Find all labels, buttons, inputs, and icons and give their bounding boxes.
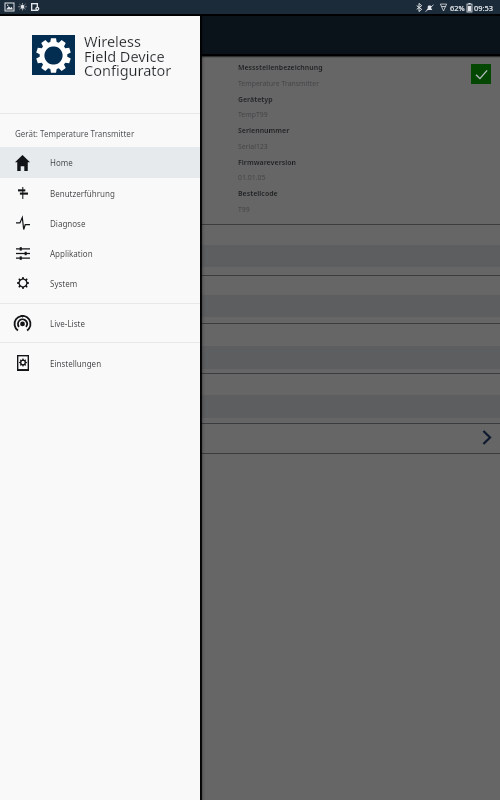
staticText: Live-Liste xyxy=(50,318,85,329)
staticText: Wireless xyxy=(84,31,141,51)
staticText: Configurator xyxy=(84,60,172,80)
button[interactable]: Home xyxy=(0,147,200,178)
staticText: Bestellcode xyxy=(238,189,278,198)
staticText: Firmwareversion xyxy=(238,158,297,167)
staticText: 62% xyxy=(450,3,465,13)
staticText: Field Device xyxy=(84,46,165,66)
button[interactable]: Applikation xyxy=(0,238,200,268)
staticText: TempT99 xyxy=(238,110,268,119)
staticText: Benutzerführung xyxy=(50,188,115,199)
staticText: Home xyxy=(50,157,73,168)
staticText: T99 xyxy=(238,205,250,214)
staticText: Serial123 xyxy=(238,142,268,151)
button[interactable]: Live-Liste xyxy=(0,304,200,342)
button[interactable]: System xyxy=(0,268,200,298)
button[interactable]: Benutzerführung xyxy=(0,178,200,208)
staticText: Gerät: Temperature Transmitter xyxy=(15,128,135,139)
staticText: System xyxy=(50,278,78,289)
button[interactable]: Status OK xyxy=(471,64,491,84)
staticText: Diagnose xyxy=(50,218,86,229)
staticText: Einstellungen xyxy=(50,358,102,369)
button[interactable]: Diagnose xyxy=(0,208,200,238)
button[interactable]: Einstellungen xyxy=(0,343,200,383)
staticText: 01.01.05 xyxy=(238,173,266,182)
staticText: 09:53 xyxy=(474,3,493,13)
staticText: Gerätetyp xyxy=(238,95,273,104)
staticText: Applikation xyxy=(50,248,93,259)
staticText: Seriennummer xyxy=(238,126,290,135)
button[interactable] xyxy=(0,15,500,54)
staticText: Messstellenbezeichnung xyxy=(238,63,323,72)
staticText: Temperature Transmitter xyxy=(238,79,320,88)
button[interactable]: Weiter xyxy=(400,423,500,452)
